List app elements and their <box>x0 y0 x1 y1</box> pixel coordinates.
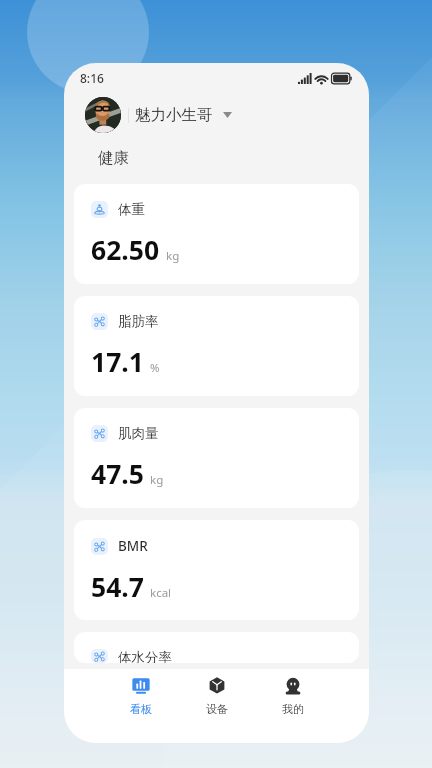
staticText: kg <box>166 248 180 264</box>
button[interactable]: 脂肪率 <box>74 296 359 396</box>
button[interactable]: 魅力小生哥 <box>135 105 232 125</box>
staticText: 魅力小生哥 <box>135 105 213 125</box>
staticText: 肌肉量 <box>118 425 159 442</box>
button[interactable]: BMR <box>74 520 359 620</box>
button[interactable]: Profile avatar <box>85 97 121 133</box>
button[interactable]: 体水分率 <box>74 632 359 663</box>
staticText: 设备 <box>206 702 228 716</box>
button[interactable]: 肌肉量 <box>74 408 359 508</box>
staticText: 54.7 <box>91 569 144 605</box>
staticText: % <box>150 360 160 376</box>
button[interactable]: 看板 <box>103 677 179 727</box>
staticText: 健康 <box>98 148 129 168</box>
staticText: kcal <box>150 585 172 601</box>
staticText: 脂肪率 <box>118 313 159 330</box>
staticText: 看板 <box>130 702 152 716</box>
staticText: 17.1 <box>91 344 144 380</box>
staticText: 8:16 <box>80 70 104 86</box>
button[interactable]: 设备 <box>179 677 255 727</box>
staticText: 体重 <box>118 201 145 218</box>
staticText: BMR <box>118 537 148 555</box>
staticText: 62.50 <box>91 232 160 268</box>
staticText: kg <box>150 472 164 488</box>
button[interactable]: 我的 <box>255 677 331 727</box>
button[interactable]: 体重 <box>74 184 359 284</box>
staticText: 47.5 <box>91 456 144 492</box>
staticText: 我的 <box>282 702 304 716</box>
staticText: 体水分率 <box>118 649 172 663</box>
